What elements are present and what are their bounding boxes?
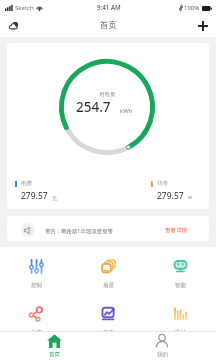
button[interactable]: 场景: [72, 259, 144, 289]
staticText: 用电量: [99, 91, 116, 98]
staticText: 分享: [31, 329, 42, 336]
button[interactable]: Weather: [5, 17, 21, 33]
button[interactable]: 智能: [144, 259, 216, 289]
staticText: 首页: [100, 20, 117, 31]
staticText: 控制: [31, 282, 42, 289]
staticText: 254.7: [76, 98, 111, 116]
staticText: 场景: [103, 282, 114, 289]
button[interactable]: 报表: [72, 306, 144, 336]
staticText: 9:41 AM: [97, 3, 121, 11]
staticText: 279.57: [21, 190, 48, 202]
staticText: w: [188, 194, 192, 201]
button[interactable]: Add: [195, 18, 211, 34]
staticText: 统计: [175, 329, 186, 336]
staticText: 电费: [21, 180, 32, 187]
staticText: kWh: [120, 107, 133, 115]
staticText: 查看详情: [165, 227, 188, 234]
staticText: 我的: [157, 351, 168, 358]
button[interactable]: 控制: [0, 259, 72, 289]
staticText: 功率: [157, 180, 168, 187]
staticText: 100%: [184, 4, 200, 12]
staticText: 警告：断路器1出现温度报警: [45, 227, 113, 234]
button[interactable]: 首页: [0, 332, 108, 360]
staticText: 智能: [175, 282, 186, 289]
staticText: 279.57: [157, 190, 184, 202]
staticText: 元: [52, 195, 57, 201]
button[interactable]: 我的: [108, 332, 216, 360]
button[interactable]: 警告：断路器1出现温度报警: [7, 216, 209, 241]
staticText: 报表: [103, 329, 114, 336]
staticText: 首页: [49, 351, 60, 358]
staticText: Sketch: [15, 4, 34, 12]
button[interactable]: 分享: [0, 306, 72, 336]
button[interactable]: 统计: [144, 306, 216, 336]
